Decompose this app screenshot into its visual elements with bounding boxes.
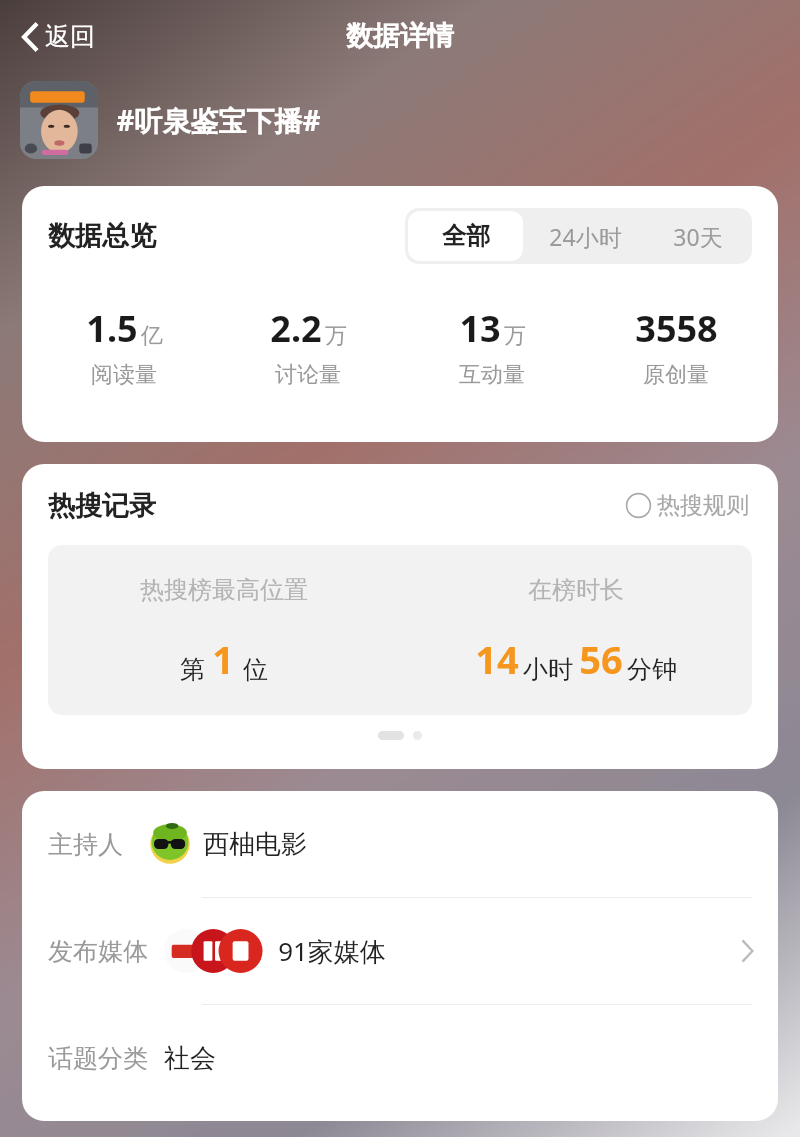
button[interactable]: 全部	[408, 211, 523, 261]
staticText: 阅读量	[91, 361, 157, 389]
staticText: 30天	[673, 221, 723, 252]
button[interactable]: 话题分类	[22, 1005, 778, 1111]
button[interactable]: 2.2	[216, 304, 400, 389]
staticText: 1.5	[86, 304, 138, 353]
staticText: 返回	[45, 21, 95, 52]
staticText: 原创量	[643, 361, 709, 389]
staticText: 1	[212, 633, 234, 685]
button[interactable]: 热搜规则	[623, 488, 752, 523]
staticText: 主持人	[48, 829, 123, 860]
staticText: 万	[325, 322, 347, 350]
staticText: 西柚电影	[203, 828, 307, 861]
button[interactable]: #听泉鉴宝下播#	[20, 72, 800, 168]
button[interactable]: 24小时	[526, 208, 644, 264]
button[interactable]: 发布媒体	[22, 898, 778, 1004]
other: 查看发布媒体	[738, 937, 756, 965]
staticText: 第	[180, 654, 205, 685]
staticText: 24小时	[549, 221, 622, 252]
staticText: 分钟	[627, 654, 677, 685]
staticText: 社会	[164, 1042, 216, 1075]
staticText: 14	[475, 633, 519, 685]
staticText: 热搜规则	[657, 491, 749, 520]
staticText: 13	[459, 304, 501, 353]
staticText: 小时	[523, 654, 573, 685]
staticText: 3558	[635, 304, 718, 353]
button[interactable]: 1.5	[32, 304, 216, 389]
button[interactable]: 热搜榜最高位置	[48, 545, 752, 715]
staticText: 在榜时长	[528, 575, 624, 605]
staticText: 2.2	[270, 304, 322, 353]
staticText: 位	[243, 654, 268, 685]
staticText: 发布媒体	[48, 936, 148, 967]
staticText: 亿	[141, 322, 163, 350]
staticText: 互动量	[459, 361, 525, 389]
staticText: #听泉鉴宝下播#	[116, 101, 321, 139]
button[interactable]: 3558	[584, 304, 768, 389]
button[interactable]: 主持人	[22, 791, 778, 897]
staticText: 讨论量	[275, 361, 341, 389]
staticText: 热搜记录	[48, 489, 156, 523]
staticText: 数据总览	[48, 219, 156, 253]
staticText: 话题分类	[48, 1043, 148, 1074]
staticText: 热搜榜最高位置	[140, 575, 308, 605]
staticText: 数据详情	[346, 19, 454, 53]
button[interactable]: 30天	[644, 208, 752, 264]
button[interactable]: 13	[400, 304, 584, 389]
button[interactable]: 返回	[14, 17, 101, 56]
staticText: 91家媒体	[278, 933, 386, 969]
staticText: 万	[504, 322, 526, 350]
staticText: 全部	[442, 221, 490, 251]
staticText: 56	[579, 633, 623, 685]
